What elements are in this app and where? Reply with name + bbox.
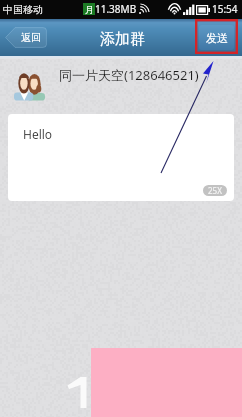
button[interactable]: 发送 <box>199 25 234 50</box>
staticText: 中国移动 <box>3 3 43 16</box>
staticText: 发送 <box>206 31 228 45</box>
button[interactable]: 同一片天空(128646521) <box>0 56 242 114</box>
staticText: 15:54 <box>212 2 238 16</box>
button[interactable]: 返回 <box>5 27 47 48</box>
staticText: Hello <box>23 126 53 142</box>
staticText: 月 <box>85 4 94 15</box>
staticText: 25X <box>208 185 222 196</box>
staticText: 添加群 <box>100 30 145 49</box>
button[interactable]: Hello <box>8 114 234 201</box>
staticText: 返回 <box>21 31 41 44</box>
staticText: 11.38MB <box>95 2 137 16</box>
staticText: 同一片天空(128646521) <box>59 66 199 84</box>
